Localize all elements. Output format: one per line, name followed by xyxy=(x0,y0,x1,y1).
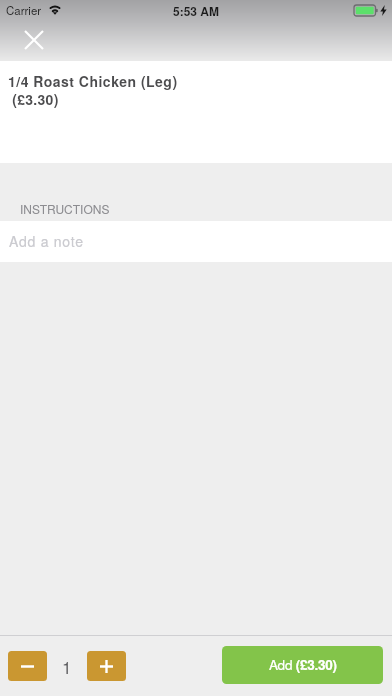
button[interactable]: Add (£3.30) xyxy=(222,646,383,684)
button[interactable]: Add a note xyxy=(0,221,392,262)
button[interactable]: Increase quantity xyxy=(87,651,126,681)
staticText: Carrier xyxy=(6,2,42,18)
staticText: INSTRUCTIONS xyxy=(20,200,110,217)
staticText: (£3.30) xyxy=(8,89,59,109)
staticText: Add (£3.30) xyxy=(269,655,337,675)
staticText: Add a note xyxy=(9,231,84,251)
staticText: 5:53 AM xyxy=(173,2,220,19)
staticText: 1 xyxy=(62,654,72,678)
staticText: 1/4 Roast Chicken (Leg) xyxy=(8,71,178,91)
button[interactable]: Decrease quantity xyxy=(8,651,47,681)
button[interactable]: Close xyxy=(21,27,46,52)
